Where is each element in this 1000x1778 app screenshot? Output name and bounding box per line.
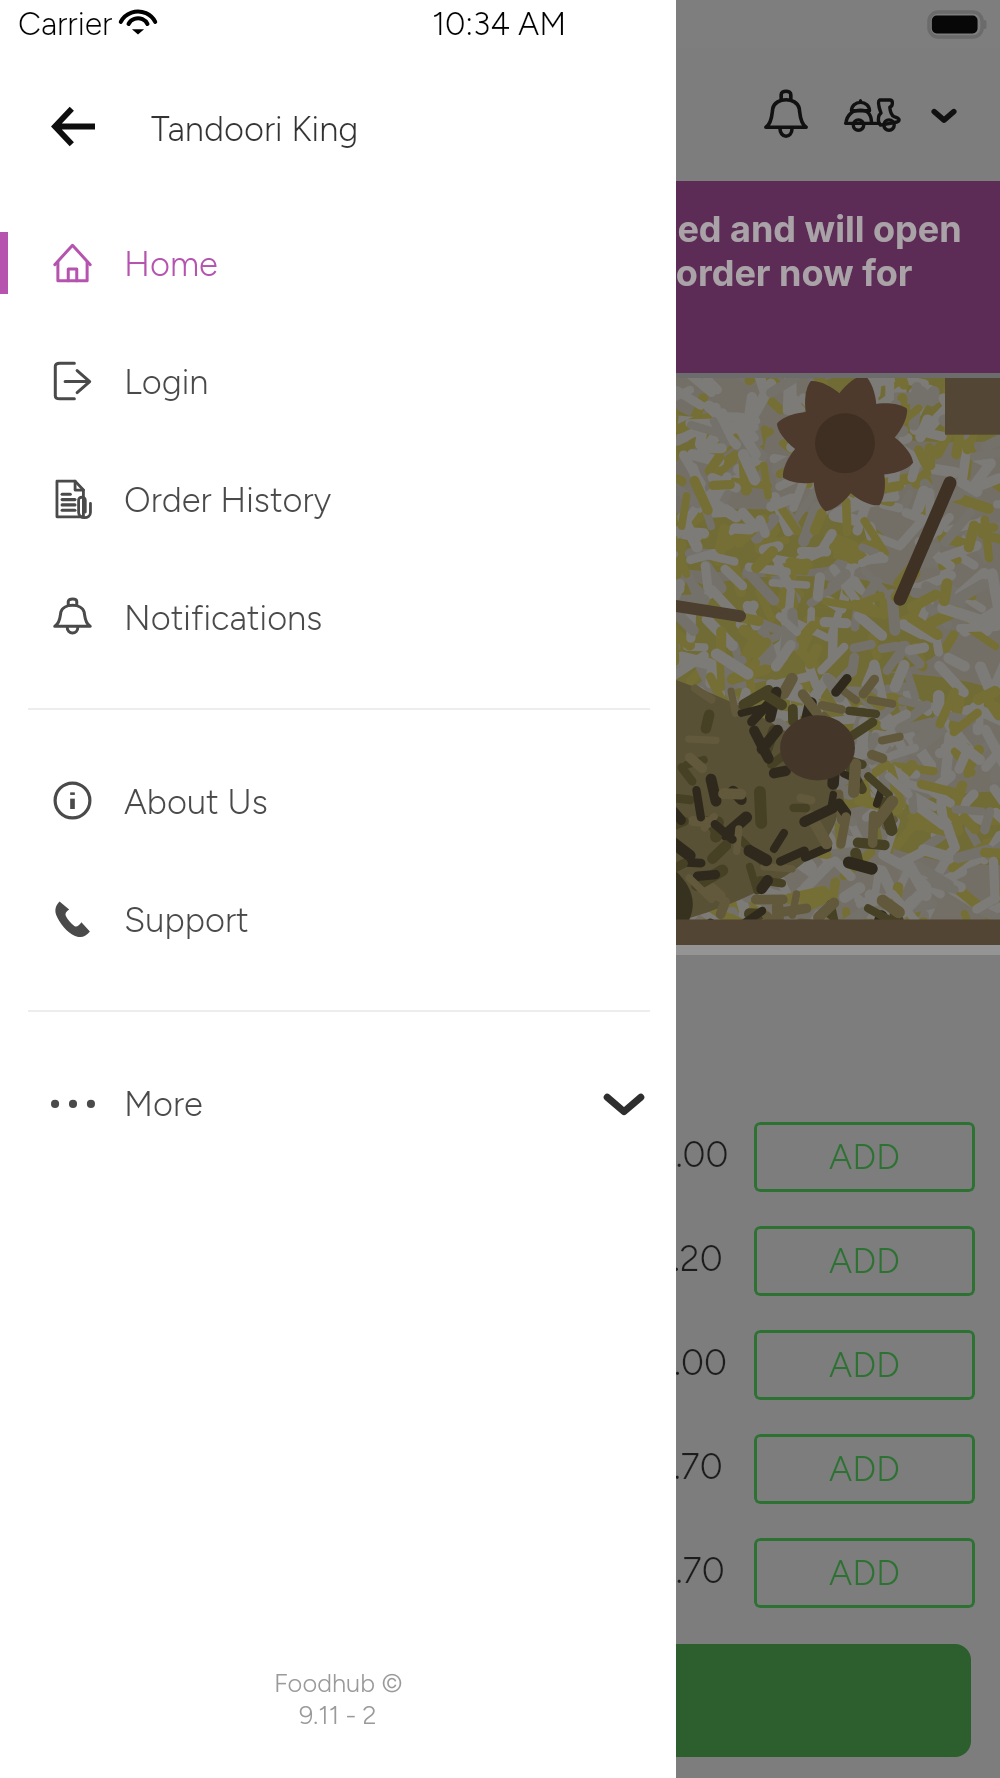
staticText: ADD — [829, 1136, 900, 1178]
button[interactable]: Order History — [0, 440, 676, 558]
staticText: More — [124, 1083, 203, 1124]
button[interactable]: Home — [0, 204, 676, 322]
staticText: ADD — [829, 1240, 900, 1282]
staticText: Notifications — [124, 597, 323, 638]
button[interactable]: Expand more — [596, 1075, 652, 1131]
button[interactable]: Notifications — [755, 80, 817, 150]
staticText: £5.00 — [633, 1341, 727, 1384]
button[interactable]: ADD — [754, 1434, 975, 1504]
staticText: About Us — [124, 781, 268, 822]
staticText: Order History — [124, 479, 332, 520]
staticText: This shop is closed and will open — [385, 207, 962, 251]
button[interactable]: Notifications — [0, 558, 676, 676]
staticText: Tandoori King — [151, 108, 359, 149]
button[interactable] — [26, 1644, 971, 1757]
button[interactable]: ADD — [754, 1226, 975, 1296]
button[interactable]: Login — [0, 322, 676, 440]
staticText: ADD — [829, 1344, 900, 1386]
button[interactable]: ADD — [754, 1330, 975, 1400]
button[interactable]: Support — [0, 860, 676, 978]
staticText: £4.70 — [633, 1549, 725, 1592]
staticText: £4.00 — [633, 1133, 729, 1176]
staticText: Foodhub © — [274, 1668, 403, 1699]
button[interactable]: Expand — [922, 85, 966, 145]
staticText: Login — [124, 361, 209, 402]
staticText: Carrier — [18, 5, 113, 43]
staticText: at 5 PM, you can order now for — [378, 251, 913, 295]
staticText: ADD — [829, 1552, 900, 1594]
staticText: £6.70 — [633, 1445, 723, 1488]
staticText: Home — [124, 243, 218, 284]
staticText: £3.20 — [633, 1237, 723, 1280]
button[interactable]: ADD — [754, 1538, 975, 1608]
button[interactable]: Back — [31, 82, 119, 170]
staticText: 9.11 - 2 — [299, 1700, 377, 1731]
button[interactable]: ADD — [754, 1122, 975, 1192]
button[interactable]: Delivery — [838, 80, 908, 150]
staticText: 10:34 AM — [432, 5, 567, 43]
button[interactable]: About Us — [0, 742, 676, 860]
button[interactable]: More — [0, 1044, 676, 1162]
staticText: Support — [124, 899, 249, 940]
staticText: ADD — [829, 1448, 900, 1490]
